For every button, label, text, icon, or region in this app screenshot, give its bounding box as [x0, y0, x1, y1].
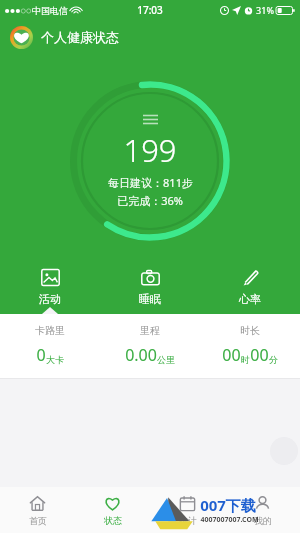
- staticText: 0.00: [125, 344, 157, 366]
- button[interactable]: 卡路里: [0, 324, 100, 366]
- staticText: 00: [222, 344, 241, 366]
- staticText: 31%: [256, 4, 274, 16]
- staticText: 17:03: [137, 3, 163, 17]
- staticText: 我的: [254, 515, 272, 526]
- staticText: 活动: [39, 292, 61, 306]
- staticText: 公里: [157, 354, 175, 365]
- staticText: 个人健康状态: [41, 29, 119, 45]
- staticText: 统计: [179, 515, 197, 526]
- staticText: 007下载: [200, 495, 256, 515]
- staticText: 分: [269, 354, 278, 365]
- staticText: 里程: [140, 324, 160, 337]
- staticText: 心率: [239, 292, 261, 306]
- staticText: 睡眠: [139, 292, 161, 306]
- button[interactable]: 首页: [0, 487, 75, 533]
- staticText: 卡路里: [35, 324, 65, 337]
- staticText: 状态: [104, 515, 122, 526]
- button[interactable]: 里程: [100, 324, 200, 366]
- staticText: 时长: [240, 324, 260, 337]
- staticText: 已完成：36%: [117, 193, 183, 208]
- staticText: 0: [36, 344, 46, 366]
- button[interactable]: 睡眠: [100, 268, 200, 306]
- button[interactable]: 状态: [75, 487, 150, 533]
- staticText: 大卡: [46, 354, 64, 365]
- button[interactable]: 活动: [0, 268, 100, 306]
- staticText: 首页: [29, 515, 47, 526]
- staticText: 4007007007.COM: [200, 515, 259, 525]
- staticText: 时: [241, 354, 250, 365]
- staticText: 199: [123, 129, 177, 171]
- staticText: 00: [250, 344, 269, 366]
- staticText: 每日建议：811步: [108, 175, 193, 190]
- button[interactable]: 时长: [200, 324, 300, 366]
- button[interactable]: 心率: [200, 268, 300, 306]
- button[interactable]: 我的: [225, 487, 300, 533]
- button[interactable]: 统计: [150, 487, 225, 533]
- staticText: 中国电信: [32, 5, 68, 16]
